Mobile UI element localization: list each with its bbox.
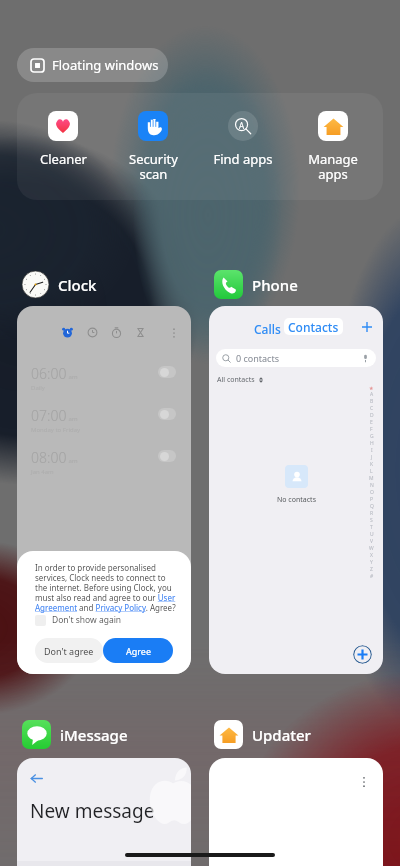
button[interactable] (158, 450, 176, 462)
staticText: am (67, 415, 78, 423)
staticText: Contacts (288, 319, 339, 335)
button[interactable]: Agree (103, 638, 173, 663)
button[interactable]: 08:00 (31, 448, 176, 490)
staticText: Monday to Friday (31, 426, 81, 434)
staticText: 08:00 (31, 448, 67, 467)
staticText: 06:00 (31, 364, 67, 383)
button[interactable]: Clock (22, 270, 97, 299)
button[interactable]: New contact (353, 645, 372, 664)
staticText: New message (30, 798, 155, 824)
staticText: iMessage (60, 725, 128, 745)
button[interactable]: Add contact (359, 319, 375, 335)
staticText: E (370, 419, 373, 426)
staticText: Updater (252, 725, 311, 745)
button[interactable]: Calls (254, 321, 281, 337)
staticText: No contacts (277, 495, 316, 505)
button[interactable] (158, 408, 176, 420)
staticText: H (370, 440, 374, 447)
staticText: N (370, 482, 374, 489)
button[interactable]: iMessage (22, 720, 128, 749)
other: More options (168, 327, 180, 339)
staticText: Don't show again (52, 614, 122, 626)
button[interactable]: Phone (214, 270, 298, 299)
staticText: In order to provide personalised service… (35, 562, 176, 613)
button[interactable]: Manage apps (291, 111, 375, 183)
staticText: Agree (126, 645, 151, 657)
button[interactable]: More options (17, 306, 191, 674)
staticText: am (67, 373, 78, 381)
button[interactable]: A (201, 111, 285, 168)
staticText: Phone (252, 275, 298, 295)
staticText: 07:00 (31, 406, 67, 425)
staticText: Manage apps (308, 150, 358, 183)
staticText: Cleaner (40, 150, 87, 168)
button[interactable]: Calls (209, 306, 383, 674)
staticText: A (239, 120, 245, 131)
button[interactable]: Cleaner (21, 111, 105, 168)
staticText: S (370, 517, 373, 524)
staticText: G (370, 433, 374, 440)
staticText: X (370, 552, 373, 559)
button[interactable]: Contacts (284, 318, 343, 335)
staticText: # (370, 573, 374, 580)
staticText: Don't agree (44, 645, 94, 657)
staticText: Find apps (213, 150, 273, 168)
button[interactable]: 0 contacts (216, 349, 376, 367)
staticText: U (370, 531, 374, 538)
staticText: Security scan (129, 150, 178, 183)
staticText: Y (370, 559, 373, 566)
staticText: ★ (369, 385, 374, 391)
staticText: P (370, 496, 374, 503)
other: Back (30, 772, 43, 785)
staticText: C (370, 405, 374, 412)
button[interactable]: Floating windows (17, 48, 168, 82)
staticText: V (370, 538, 374, 545)
staticText: Floating windows (52, 56, 159, 74)
staticText: 0 contacts (236, 352, 279, 364)
button[interactable]: 06:00 (31, 364, 176, 406)
staticText: R (370, 510, 374, 517)
staticText: O (370, 489, 374, 496)
staticText: Q (370, 503, 374, 510)
other: More options (358, 776, 370, 788)
button[interactable]: More options (209, 758, 383, 866)
button[interactable]: Updater (214, 720, 311, 749)
staticText: W (369, 545, 374, 552)
staticText: A (370, 391, 374, 398)
staticText: am (67, 457, 78, 465)
button[interactable]: 07:00 (31, 406, 176, 448)
staticText: Clock (58, 275, 97, 295)
button[interactable]: Back (17, 758, 191, 866)
button[interactable] (158, 366, 176, 378)
staticText: Z (370, 566, 373, 573)
staticText: T (370, 524, 373, 531)
staticText: B (370, 398, 374, 405)
staticText: D (370, 412, 374, 419)
staticText: M (369, 475, 374, 482)
staticText: K (370, 461, 374, 468)
staticText: F (370, 426, 373, 433)
staticText: I (371, 447, 373, 454)
staticText: All contacts (217, 375, 255, 385)
button[interactable]: Security scan (111, 111, 195, 183)
button[interactable]: Don't agree (35, 638, 103, 663)
staticText: J (371, 454, 373, 461)
staticText: L (370, 468, 373, 475)
staticText: Daily (31, 384, 45, 392)
